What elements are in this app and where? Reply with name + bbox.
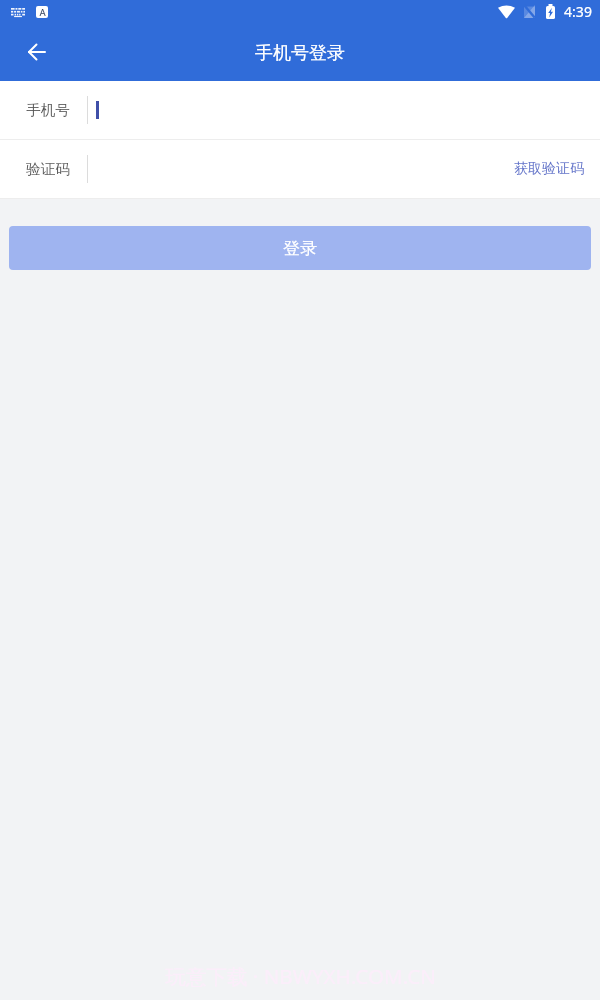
staticText: 登录 [283,238,317,259]
staticText: 4:39 [564,2,592,21]
staticText: 玩意下载 · NBWYXH.COM.CN [165,962,436,990]
staticText: 手机号 [26,101,70,119]
button[interactable]: 登录 [9,226,591,270]
button[interactable]: 获取验证码 [502,147,596,191]
button[interactable]: 手机号 [0,81,600,139]
staticText: 获取验证码 [514,160,584,178]
button[interactable]: Back [10,29,62,81]
staticText: A [39,6,46,18]
staticText: 手机号登录 [255,42,345,65]
staticText: 验证码 [26,160,70,178]
